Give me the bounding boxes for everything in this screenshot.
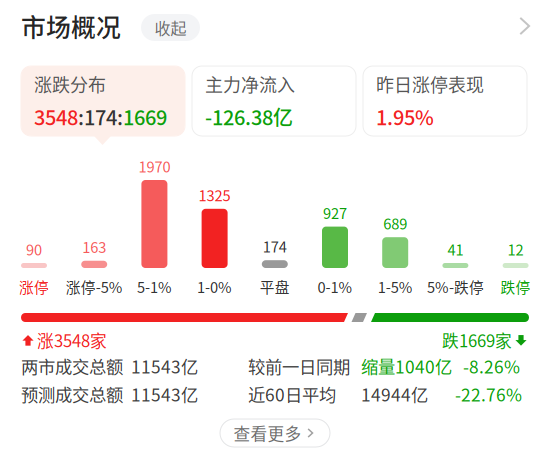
staticText: 1970 bbox=[138, 155, 170, 177]
staticText: 1.95% bbox=[376, 102, 434, 131]
button[interactable]: 主力净流入 bbox=[192, 66, 356, 136]
staticText: 缩量1040亿 bbox=[361, 353, 452, 379]
staticText: -22.76% bbox=[455, 381, 522, 407]
staticText: 90 bbox=[26, 238, 42, 260]
button[interactable]: 涨跌分布 bbox=[21, 66, 185, 136]
staticText: 1-0% bbox=[197, 276, 232, 297]
staticText: 较前一日同期 bbox=[248, 353, 350, 379]
staticText: :174: bbox=[78, 102, 123, 131]
staticText: 0-1% bbox=[317, 276, 352, 297]
staticText: 12 bbox=[508, 238, 524, 260]
staticText: 涨跌分布 bbox=[34, 71, 106, 97]
staticText: -8.26% bbox=[463, 353, 520, 379]
staticText: 涨停-5% bbox=[66, 276, 123, 297]
button[interactable]: 查看更多 bbox=[220, 419, 330, 447]
staticText: 跌1669家 bbox=[442, 328, 512, 352]
staticText: 平盘 bbox=[260, 276, 290, 297]
staticText: 5-1% bbox=[137, 276, 172, 297]
staticText: 预测成交总额 bbox=[21, 381, 123, 407]
staticText: 1325 bbox=[199, 184, 231, 205]
staticText: 近60日平均 bbox=[248, 381, 336, 407]
staticText: 查看更多 bbox=[233, 421, 301, 445]
staticText: 3548 bbox=[34, 102, 78, 131]
staticText: 市场概况 bbox=[21, 8, 121, 44]
staticText: 163 bbox=[82, 236, 106, 257]
staticText: 主力净流入 bbox=[205, 71, 295, 97]
staticText: 41 bbox=[447, 238, 463, 260]
staticText: -126.38亿 bbox=[205, 102, 293, 131]
button[interactable]: 昨日涨停表现 bbox=[363, 66, 527, 136]
staticText: 174 bbox=[263, 236, 287, 257]
staticText: 1-5% bbox=[378, 276, 413, 297]
staticText: 1669 bbox=[123, 102, 167, 131]
staticText: 昨日涨停表现 bbox=[376, 71, 484, 97]
button[interactable]: 收起 bbox=[141, 14, 200, 41]
button[interactable]: 市场概况详情 bbox=[512, 12, 540, 40]
staticText: 689 bbox=[383, 213, 407, 234]
staticText: 跌停 bbox=[501, 276, 531, 297]
staticText: 927 bbox=[323, 202, 347, 223]
staticText: 14944亿 bbox=[361, 381, 428, 407]
staticText: 11543亿 bbox=[131, 381, 198, 407]
staticText: 5%-跌停 bbox=[427, 276, 484, 297]
staticText: 11543亿 bbox=[131, 353, 198, 379]
staticText: 涨停 bbox=[19, 276, 49, 297]
staticText: 两市成交总额 bbox=[21, 353, 123, 379]
staticText: 涨3548家 bbox=[37, 328, 107, 352]
staticText: 收起 bbox=[154, 16, 186, 39]
